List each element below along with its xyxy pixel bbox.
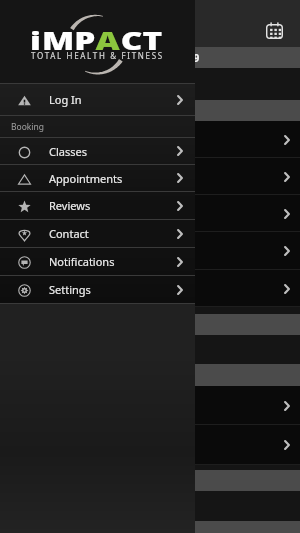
button[interactable] bbox=[0, 232, 300, 270]
button[interactable] bbox=[0, 195, 300, 232]
button[interactable]: Notifications bbox=[0, 248, 195, 275]
button[interactable]: Appointments bbox=[0, 165, 195, 191]
button[interactable] bbox=[0, 270, 300, 307]
staticText: Contact bbox=[49, 226, 89, 241]
button[interactable]: Calendar bbox=[259, 15, 289, 45]
staticText: MP bbox=[42, 23, 95, 57]
button[interactable] bbox=[0, 158, 300, 195]
staticText: Settings bbox=[49, 282, 91, 297]
staticText: Thursday, January 9 bbox=[101, 51, 200, 65]
button[interactable]: Classes bbox=[0, 138, 195, 164]
button[interactable]: Reviews bbox=[0, 192, 195, 219]
staticText: i bbox=[30, 23, 42, 57]
button[interactable] bbox=[0, 425, 300, 465]
button[interactable]: Contact bbox=[0, 220, 195, 247]
button[interactable]: Settings bbox=[0, 276, 195, 303]
button[interactable] bbox=[0, 386, 300, 425]
staticText: A bbox=[95, 23, 121, 57]
staticText: Booking bbox=[11, 121, 45, 133]
staticText: CT bbox=[121, 23, 163, 57]
staticText: Notifications bbox=[49, 254, 115, 269]
staticText: TOTAL HEALTH & FITNESS bbox=[31, 50, 164, 61]
staticText: Classes bbox=[49, 144, 87, 159]
staticText: Appointments bbox=[49, 171, 123, 186]
button[interactable] bbox=[0, 121, 300, 158]
staticText: Reviews bbox=[49, 198, 91, 213]
staticText: Log In bbox=[49, 92, 82, 107]
button[interactable]: Log In bbox=[0, 84, 195, 115]
